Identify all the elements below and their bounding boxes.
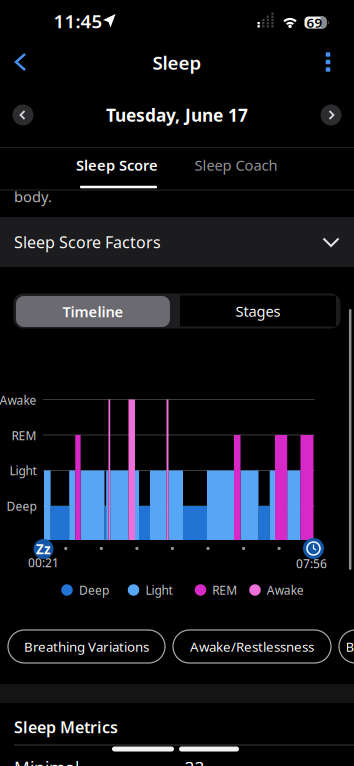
staticText: Sleep Coach [194,155,277,175]
staticText: 22 [184,756,204,766]
staticText: Light [9,462,36,478]
staticText: Stages [235,301,280,321]
button[interactable]: Awake/Restlessness [173,630,331,663]
staticText: Minimal [14,756,79,766]
staticText: Breathing Variations [24,638,149,655]
button[interactable]: Timeline [16,296,170,327]
button[interactable]: Stages [180,295,336,326]
button[interactable]: Breathing Variations [8,630,165,663]
button[interactable]: Sleep Coach [194,155,277,175]
staticText: Awake [267,582,304,598]
staticText: REM [11,427,36,443]
button[interactable] [320,104,341,125]
staticText: Sleep Metrics [14,716,118,738]
button[interactable] [12,104,33,125]
staticText: Light [145,582,172,598]
staticText: Zz [36,540,51,558]
button[interactable] [313,47,343,77]
button[interactable]: Tuesday, June 17 [106,103,248,126]
staticText: 00:21 [28,554,59,570]
staticText: 11:45 [53,9,102,33]
staticText: Bo [345,638,354,655]
staticText: Sleep Score [76,155,158,175]
staticText: Sleep [152,50,201,75]
staticText: Tuesday, June 17 [106,103,248,126]
button[interactable] [339,630,354,663]
staticText: Timeline [62,302,123,321]
staticText: Deep [6,498,36,514]
staticText: Awake [0,392,36,408]
staticText: REM [212,582,237,598]
staticText: Sleep Score Factors [14,231,161,253]
button[interactable] [4,45,34,79]
staticText: body. [14,187,52,206]
button[interactable]: Sleep Score Factors [0,217,354,267]
staticText: Awake/Restlessness [190,638,314,655]
button[interactable]: Sleep Score [76,155,158,175]
staticText: 69 [306,14,322,31]
staticText: Deep [79,582,109,598]
staticText: 07:56 [296,555,327,571]
